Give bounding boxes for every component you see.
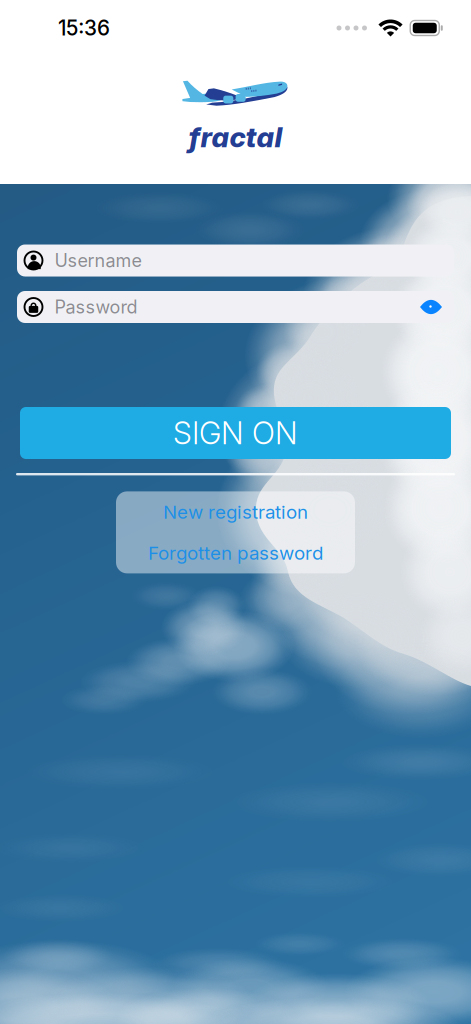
staticText: SIGN ON [173,414,298,451]
staticText: New registration [163,501,308,523]
button[interactable]: New registration [116,491,355,532]
button[interactable]: SIGN ON [20,407,451,459]
staticText: Username [54,250,141,271]
button[interactable]: Password [17,291,454,323]
button[interactable]: Forgotten password [116,532,355,573]
staticText: fractal [188,120,282,154]
staticText: Forgotten password [148,542,323,564]
staticText: 15:36 [58,15,110,40]
staticText: Password [54,296,137,318]
button[interactable]: Username [17,244,454,276]
